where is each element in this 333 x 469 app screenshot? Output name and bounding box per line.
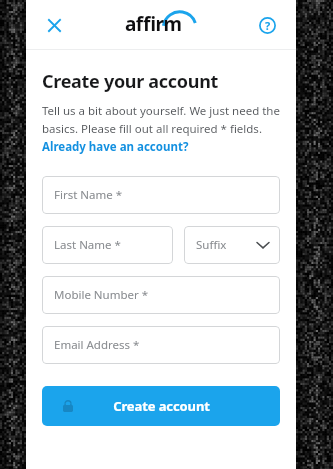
button[interactable]: Create account bbox=[42, 386, 280, 426]
button[interactable]: Last Name * bbox=[42, 226, 173, 264]
staticText: Last Name * bbox=[54, 237, 121, 253]
button[interactable]: First Name * bbox=[42, 176, 280, 214]
staticText: Create your account bbox=[42, 69, 219, 94]
button[interactable]: Mobile Number * bbox=[42, 276, 280, 314]
button[interactable]: Suffix dropdown bbox=[184, 226, 280, 264]
staticText: Create account bbox=[113, 397, 210, 415]
button[interactable]: Close bbox=[38, 9, 70, 41]
staticText: First Name * bbox=[54, 187, 123, 203]
button[interactable]: Email Address * bbox=[42, 326, 280, 364]
staticText: Suffix bbox=[196, 237, 227, 253]
staticText: ? bbox=[265, 18, 271, 33]
staticText: Email Address * bbox=[54, 337, 140, 353]
staticText: Tell us a bit about yourself. We just ne… bbox=[42, 103, 280, 154]
button[interactable]: Help bbox=[252, 10, 282, 40]
staticText: affirm bbox=[125, 11, 182, 36]
staticText: Mobile Number * bbox=[54, 287, 149, 303]
